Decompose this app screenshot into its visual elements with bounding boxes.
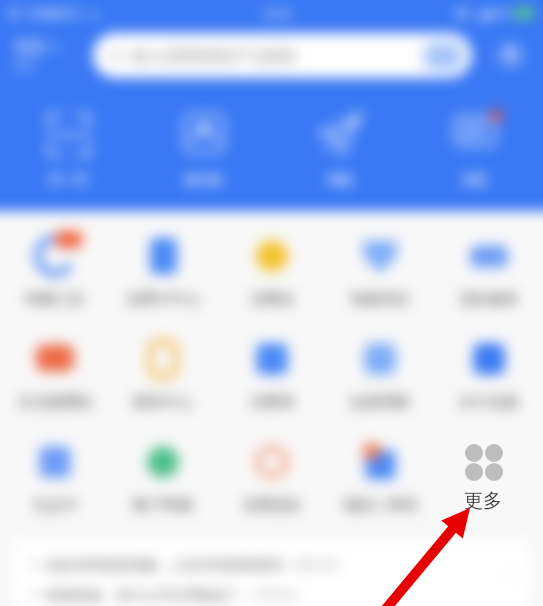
button[interactable]: 贷款服务 <box>435 211 543 309</box>
staticText: 礼品卡 <box>33 496 78 515</box>
staticText: 智能存款 <box>350 290 410 309</box>
button[interactable]: 消息 <box>407 110 542 187</box>
button[interactable]: 信用贷款 <box>218 417 326 515</box>
staticText: 账户明细 <box>133 496 193 515</box>
staticText: 10:18 <box>262 6 291 21</box>
button[interactable]: 北京 <box>14 37 93 73</box>
button[interactable]: 信用卡中心 <box>109 211 217 309</box>
staticText: 信用贷款 <box>242 496 302 515</box>
staticText: 消费券 <box>250 393 295 412</box>
button[interactable]: 扫一扫 <box>1 110 136 187</box>
button[interactable]: 短期理财 <box>326 314 434 412</box>
button[interactable]: 消费券 <box>218 314 326 412</box>
staticText: 中国联通 5G <box>26 6 82 20</box>
staticText: 贷款服务 <box>459 290 519 309</box>
button[interactable] <box>435 417 543 516</box>
button[interactable]: 输入您要搜索的产品服务 <box>93 33 472 78</box>
staticText: 出行优惠 <box>459 393 519 412</box>
button[interactable]: 收付款 <box>136 110 271 187</box>
staticText: 消息 <box>462 171 488 187</box>
staticText: 我的二维码 <box>343 496 418 515</box>
staticText: 更多 <box>464 489 502 513</box>
staticText: 转账汇款 <box>25 290 85 309</box>
button[interactable]: 财富中心 <box>109 314 217 412</box>
staticText: 生活缴费站 <box>18 393 93 412</box>
button[interactable]: 出行优惠 <box>435 314 543 412</box>
staticText: 搜索 <box>430 48 456 64</box>
staticText: 北京 <box>14 37 46 57</box>
button[interactable]: 转账 <box>272 110 407 187</box>
staticText: 一 存款利率最新调整，公告详情请查看表 <box>28 555 284 574</box>
staticText: 信用卡中心 <box>126 290 201 309</box>
staticText: 收付款 <box>184 171 223 187</box>
button[interactable]: 礼品卡 <box>1 417 109 515</box>
staticText: 财富中心 <box>133 393 193 412</box>
staticText: 转账 <box>327 171 353 187</box>
button[interactable]: 生活缴费站 <box>1 314 109 412</box>
staticText: 一 智能客服，有什么可以帮助您？ <box>28 585 242 604</box>
staticText: 82 <box>498 6 510 20</box>
button[interactable]: 我的二维码 <box>326 417 434 515</box>
staticText: 输入您要搜索的产品服务 <box>132 47 297 66</box>
staticText: 分行 <box>14 59 36 73</box>
staticText: 扫一扫 <box>49 171 88 187</box>
button[interactable]: 账户明细 <box>109 417 217 515</box>
button[interactable]: 消费金 <box>218 211 326 309</box>
button[interactable]: 智能存款 <box>326 211 434 309</box>
staticText: 消费金 <box>250 290 295 309</box>
button[interactable]: 转账汇款 <box>1 211 109 309</box>
button[interactable]: 搜索 <box>421 40 465 72</box>
button[interactable]: 一 存款利率最新调整，公告详情请查看表 <box>13 539 530 606</box>
staticText: 短期理财 <box>350 393 410 412</box>
button[interactable]: Profile <box>495 40 526 71</box>
